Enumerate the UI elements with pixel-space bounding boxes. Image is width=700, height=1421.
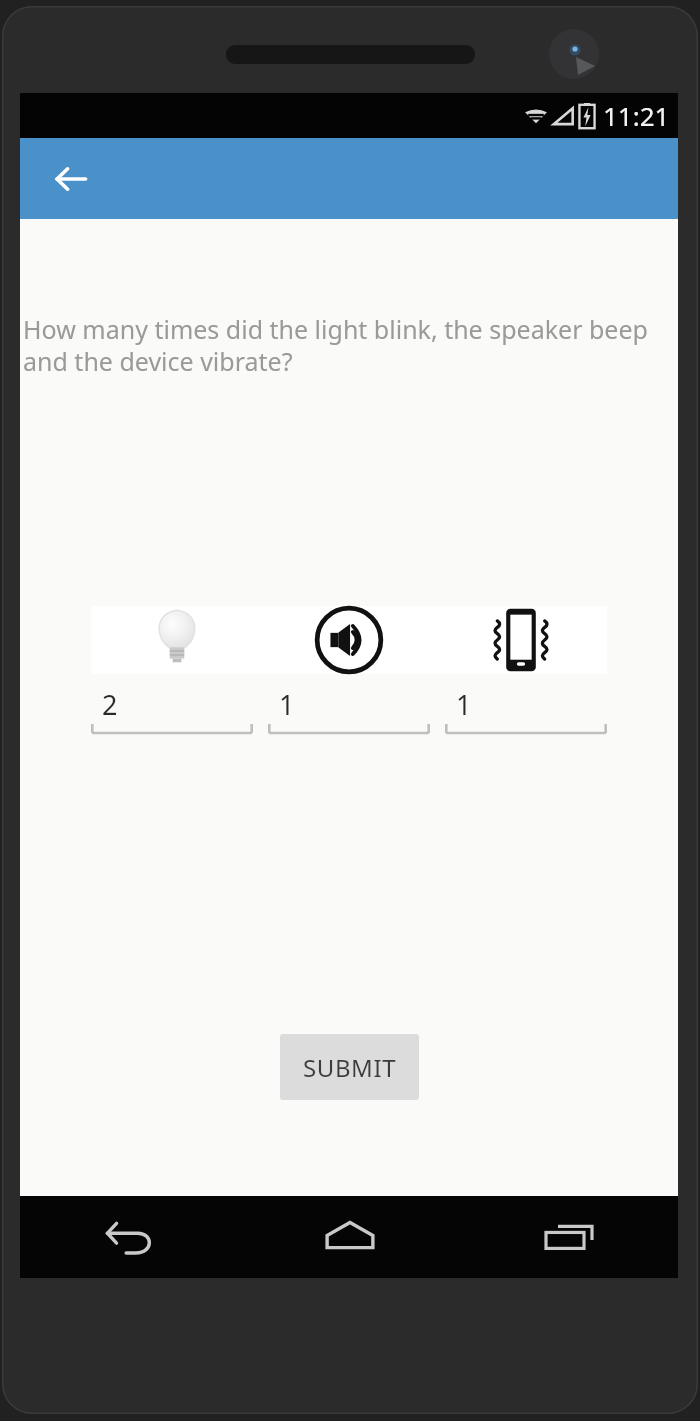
button[interactable]: Back [20, 1196, 240, 1278]
button[interactable]: Home [240, 1196, 459, 1278]
button[interactable]: Recent apps [459, 1196, 678, 1278]
button[interactable]: SUBMIT [280, 1034, 419, 1100]
staticText: SUBMIT [303, 1051, 397, 1084]
button[interactable]: Navigate up [40, 148, 102, 210]
staticText: 1 [279, 686, 295, 723]
staticText: 11:21 [603, 98, 670, 133]
other: Speaker [314, 606, 384, 674]
other: Vibrate [484, 606, 558, 674]
other: Light [155, 607, 199, 673]
staticText: 2 [102, 686, 118, 723]
staticText: 1 [456, 686, 472, 723]
button[interactable]: 1 [445, 681, 607, 739]
button[interactable]: 2 [91, 681, 253, 739]
staticText: How many times did the light blink, the … [23, 312, 668, 378]
button[interactable]: 1 [268, 681, 430, 739]
